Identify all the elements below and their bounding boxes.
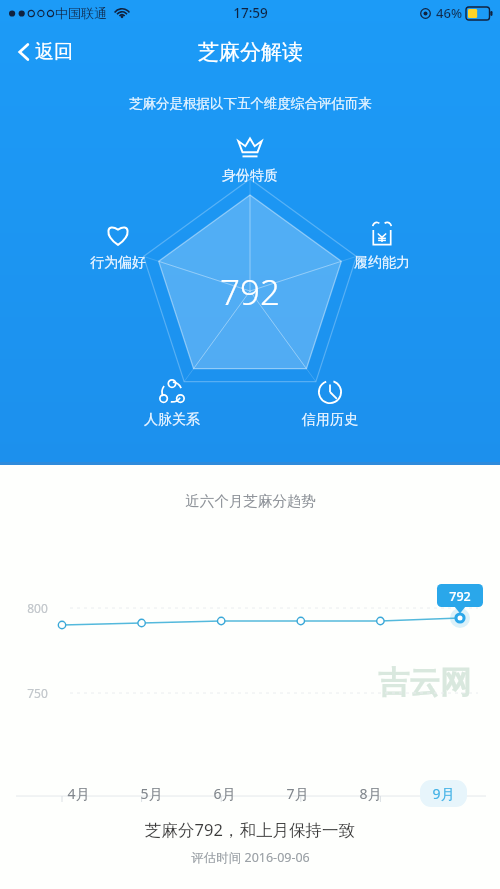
staticText: 7月 (286, 784, 309, 803)
staticText: 吉云网 (378, 663, 471, 702)
button[interactable]: 行为偏好 (68, 220, 168, 272)
button[interactable]: 7月 (261, 784, 334, 803)
staticText: 行为偏好 (90, 254, 146, 272)
staticText: 46% (436, 4, 462, 22)
button[interactable]: 人脉关系 (122, 377, 222, 429)
staticText: 信用历史 (302, 411, 358, 429)
staticText: 芝麻分是根据以下五个维度综合评估而来 (129, 95, 372, 112)
staticText: 6月 (213, 784, 236, 803)
button[interactable]: 6月 (188, 784, 261, 803)
button[interactable]: 身份特质 (200, 133, 300, 185)
staticText: 身份特质 (222, 167, 278, 185)
staticText: 792 (220, 268, 280, 316)
staticText: 芝麻分792，和上月保持一致 (145, 818, 355, 841)
button[interactable]: 返回 (10, 32, 81, 72)
staticText: 中国联通 (55, 5, 107, 21)
button[interactable]: 8月 (334, 784, 407, 803)
staticText: 800 (27, 600, 48, 616)
staticText: 返回 (35, 40, 73, 64)
button[interactable]: 信用历史 (280, 377, 380, 429)
staticText: 近六个月芝麻分趋势 (185, 492, 316, 510)
staticText: 履约能力 (354, 254, 410, 272)
button[interactable]: 4月 (42, 784, 115, 803)
staticText: 4月 (67, 784, 90, 803)
button[interactable]: 9月 (407, 780, 480, 807)
staticText: 9月 (432, 784, 455, 803)
staticText: 792 (449, 588, 471, 605)
staticText: 8月 (359, 784, 382, 803)
button[interactable]: 5月 (115, 784, 188, 803)
staticText: 人脉关系 (144, 411, 200, 429)
staticText: 芝麻分解读 (198, 39, 303, 65)
button[interactable]: 履约能力 (332, 220, 432, 272)
staticText: 评估时间 2016-09-06 (191, 849, 310, 866)
staticText: 17:59 (233, 4, 268, 22)
staticText: 5月 (140, 784, 163, 803)
staticText: 750 (27, 685, 48, 701)
